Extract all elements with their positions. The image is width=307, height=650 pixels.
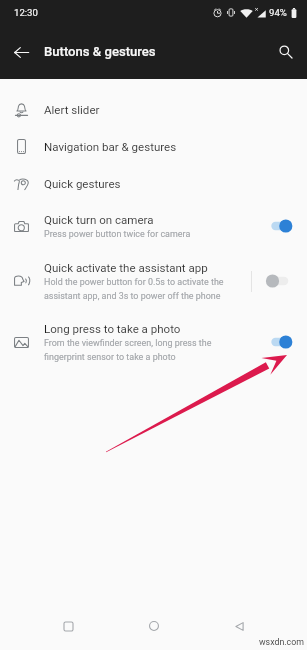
button[interactable]: Switch on bbox=[271, 335, 292, 349]
button[interactable]: Home bbox=[137, 609, 171, 643]
button[interactable]: Search bbox=[265, 29, 307, 75]
staticText: Quick activate the assistant app bbox=[44, 261, 208, 275]
staticText: wsxdn.com bbox=[259, 637, 304, 647]
button[interactable]: Navigate up bbox=[0, 29, 42, 75]
button[interactable]: Switch off bbox=[271, 274, 292, 288]
button[interactable]: Long press to take a photo bbox=[0, 311, 307, 372]
button[interactable]: Alert slider bbox=[0, 91, 307, 128]
staticText: Navigation bar & gestures bbox=[44, 140, 177, 154]
button[interactable]: Quick turn on camera bbox=[0, 202, 307, 250]
staticText: Buttons & gestures bbox=[44, 44, 156, 59]
staticText: Quick turn on camera bbox=[44, 213, 154, 227]
staticText: Hold the power button for 0.5s to activa… bbox=[44, 277, 224, 301]
button[interactable]: Quick activate the assistant app bbox=[0, 250, 307, 311]
staticText: Alert slider bbox=[44, 103, 100, 117]
staticText: From the viewfinder screen, long press t… bbox=[44, 338, 212, 362]
staticText: 12:30 bbox=[14, 7, 38, 18]
button[interactable]: Back bbox=[222, 609, 256, 643]
staticText: 94% bbox=[269, 7, 287, 18]
button[interactable]: Quick gestures bbox=[0, 165, 307, 202]
staticText: Quick gestures bbox=[44, 177, 121, 191]
staticText: Long press to take a photo bbox=[44, 322, 181, 336]
button[interactable]: Navigation bar & gestures bbox=[0, 128, 307, 165]
staticText: Press power button twice for camera bbox=[44, 229, 191, 239]
button[interactable]: Recent apps bbox=[51, 609, 85, 643]
button[interactable]: Switch on bbox=[271, 219, 292, 233]
